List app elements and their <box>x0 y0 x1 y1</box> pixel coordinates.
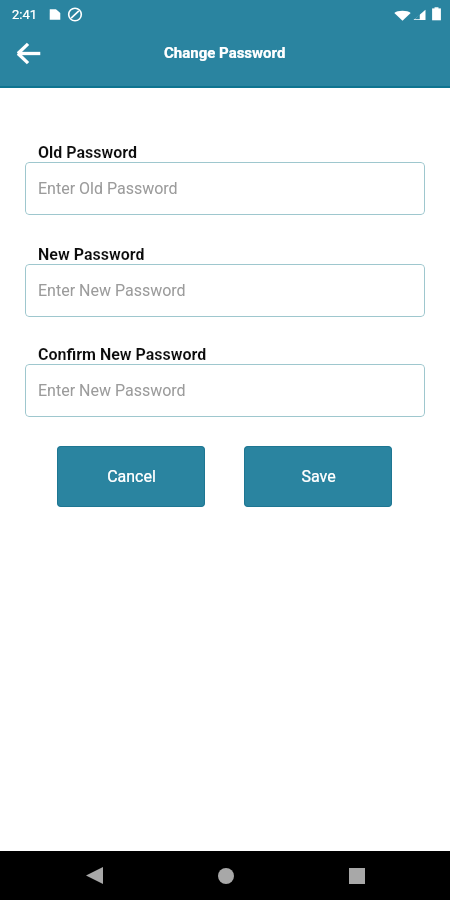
button[interactable]: Recents <box>332 851 381 900</box>
button[interactable]: Enter New Password <box>25 364 425 417</box>
staticText: Enter New Password <box>38 281 186 300</box>
staticText: Confirm New Password <box>38 345 207 364</box>
button[interactable]: Back <box>5 29 53 77</box>
button[interactable]: Enter Old Password <box>25 162 425 215</box>
staticText: Old Password <box>38 143 137 162</box>
button[interactable]: Save <box>244 446 392 507</box>
staticText: Change Password <box>164 44 286 62</box>
staticText: Save <box>301 467 336 486</box>
staticText: 2:41 <box>12 7 38 22</box>
staticText: Enter New Password <box>38 381 186 400</box>
button[interactable]: Navigate back <box>70 851 119 900</box>
button[interactable]: Home <box>201 851 250 900</box>
staticText: Enter Old Password <box>38 179 178 198</box>
button[interactable]: Cancel <box>57 446 205 507</box>
button[interactable]: Enter New Password <box>25 264 425 317</box>
staticText: New Password <box>38 245 145 264</box>
staticText: Cancel <box>107 467 156 486</box>
